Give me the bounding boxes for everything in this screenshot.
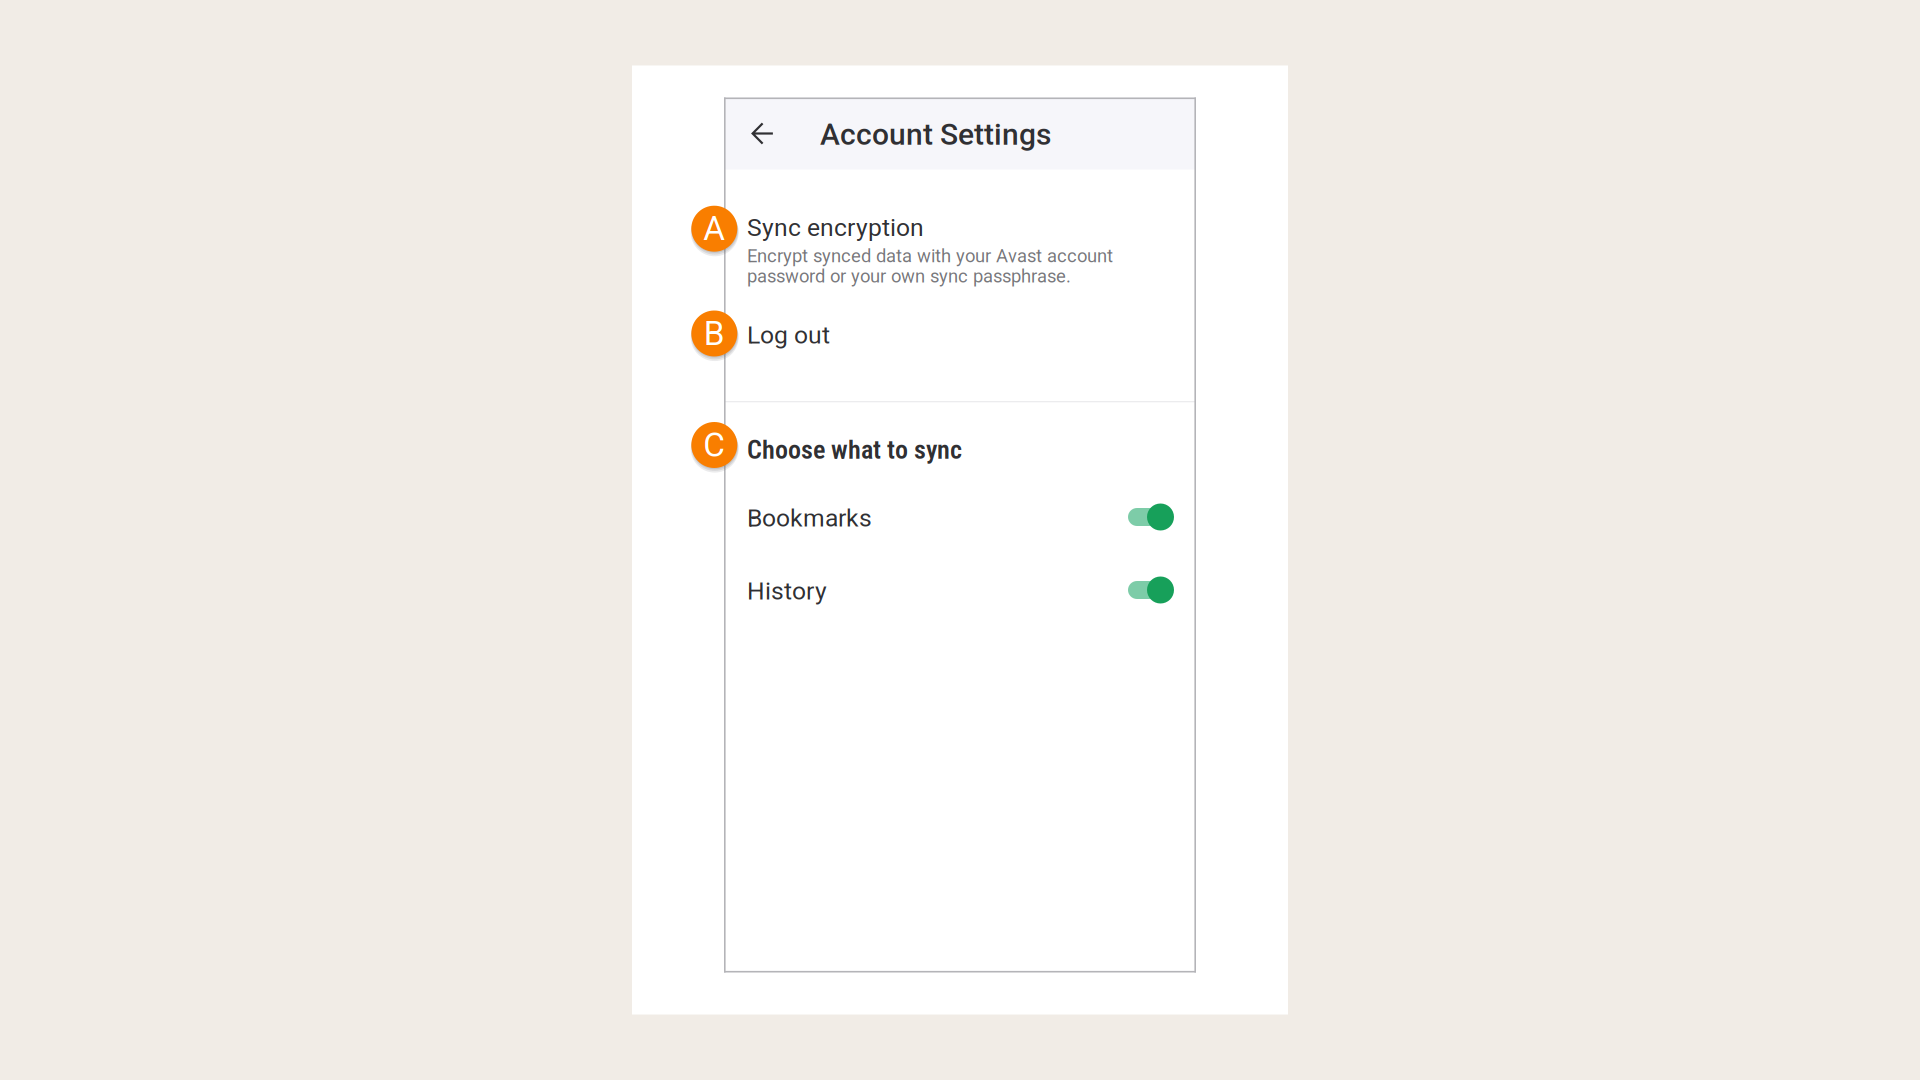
- button[interactable]: Sync encryption: [724, 205, 1196, 301]
- staticText: password or your own sync passphrase.: [747, 265, 1071, 287]
- staticText: Bookmarks: [747, 503, 872, 532]
- staticText: B: [704, 314, 725, 353]
- staticText: Choose what to sync: [747, 434, 962, 465]
- button[interactable]: History: [724, 564, 1196, 606]
- staticText: History: [747, 576, 827, 605]
- staticText: Log out: [747, 320, 830, 349]
- button[interactable]: Log out: [724, 304, 1196, 362]
- button[interactable]: Back: [735, 97, 791, 169]
- staticText: A: [703, 209, 725, 248]
- button[interactable]: Bookmarks: [724, 491, 1196, 533]
- staticText: Encrypt synced data with your Avast acco…: [747, 245, 1113, 267]
- staticText: Account Settings: [820, 117, 1051, 152]
- staticText: Sync encryption: [747, 213, 924, 242]
- staticText: C: [703, 425, 725, 465]
